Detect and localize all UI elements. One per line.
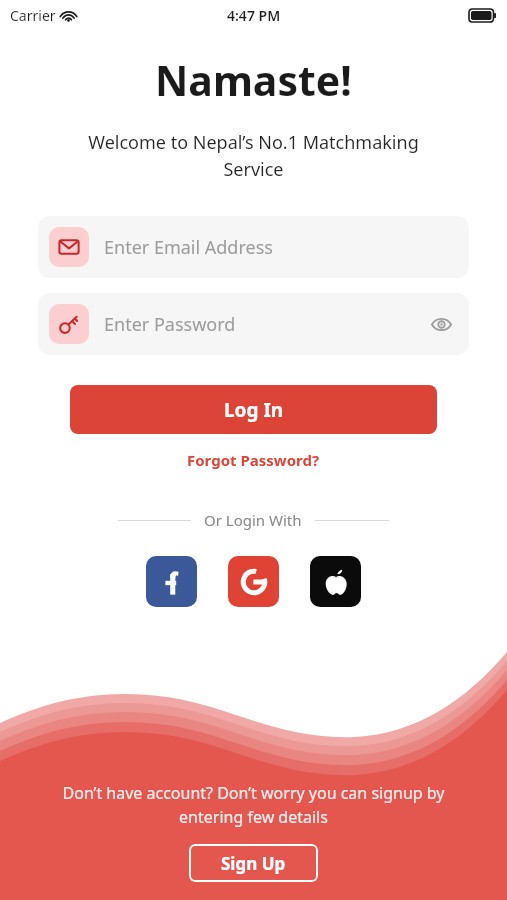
button[interactable]: Show password [424, 307, 458, 341]
staticText: Or Login With [204, 510, 302, 530]
button[interactable]: Log In [70, 385, 437, 434]
button[interactable]: Forgot Password? [179, 447, 328, 473]
staticText: Welcome to Nepal’s No.1 Matchmaking Serv… [56, 130, 451, 181]
button[interactable]: Sign in with Google [228, 556, 279, 607]
staticText: Don’t have account? Don’t worry you can … [44, 782, 463, 828]
staticText: 4:47 PM [227, 6, 281, 25]
staticText: Namaste! [155, 52, 352, 108]
button[interactable]: Sign in with Facebook [146, 556, 197, 607]
staticText: Forgot Password? [187, 450, 320, 470]
staticText: Enter Email Address [104, 235, 273, 260]
button[interactable]: Enter Password [38, 293, 469, 355]
button[interactable]: Enter Email Address [38, 216, 469, 278]
staticText: Sign Up [221, 852, 286, 875]
button[interactable]: Sign Up [189, 844, 318, 882]
staticText: Log In [224, 397, 284, 423]
button[interactable]: Sign in with Apple [310, 556, 361, 607]
staticText: Carrier [10, 6, 56, 25]
staticText: Enter Password [104, 312, 236, 337]
